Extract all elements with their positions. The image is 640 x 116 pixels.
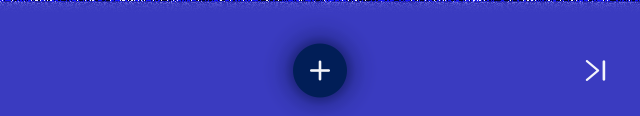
- button[interactable]: Add: [293, 43, 347, 97]
- button[interactable]: Skip forward: [573, 48, 617, 92]
